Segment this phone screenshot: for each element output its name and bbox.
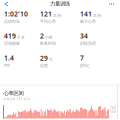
staticText: 小时 <box>45 35 53 40</box>
staticText: EPOC <box>80 63 90 68</box>
staticText: 温度 <box>40 63 48 68</box>
staticText: 163 <box>110 106 116 109</box>
staticText: 1.4 <box>4 53 14 62</box>
staticText: 121 <box>40 9 52 18</box>
staticText: 419 <box>4 31 16 40</box>
staticText: 154 <box>110 110 116 113</box>
staticText: 7 <box>80 53 84 62</box>
button[interactable]: Back <box>0 0 13 8</box>
staticText: 训练负荷 <box>80 41 96 46</box>
staticText: 心率区间 <box>3 90 23 97</box>
staticText: 运动时长 <box>4 19 20 24</box>
staticText: 次/分 <box>53 13 62 18</box>
button[interactable]: More options <box>105 0 118 8</box>
staticText: 力量训练 <box>50 0 70 7</box>
staticText: 1:02'10 <box>4 9 28 18</box>
staticText: 最大心率 <box>80 19 96 24</box>
staticText: 恢复时间 <box>40 41 56 46</box>
staticText: 29 <box>40 54 48 63</box>
staticText: 141 <box>80 9 92 18</box>
staticText: ℃ <box>49 57 53 62</box>
staticText: 活动能量 <box>4 41 20 46</box>
staticText: 平均心率 <box>40 19 56 24</box>
staticText: 千卡 <box>17 35 25 40</box>
staticText: 2 <box>40 31 44 40</box>
staticText: 次/分 <box>93 13 102 18</box>
staticText: 平均心率 121 次/分 <box>3 97 30 101</box>
staticText: 34 <box>80 31 88 40</box>
staticText: PTE <box>4 63 10 68</box>
